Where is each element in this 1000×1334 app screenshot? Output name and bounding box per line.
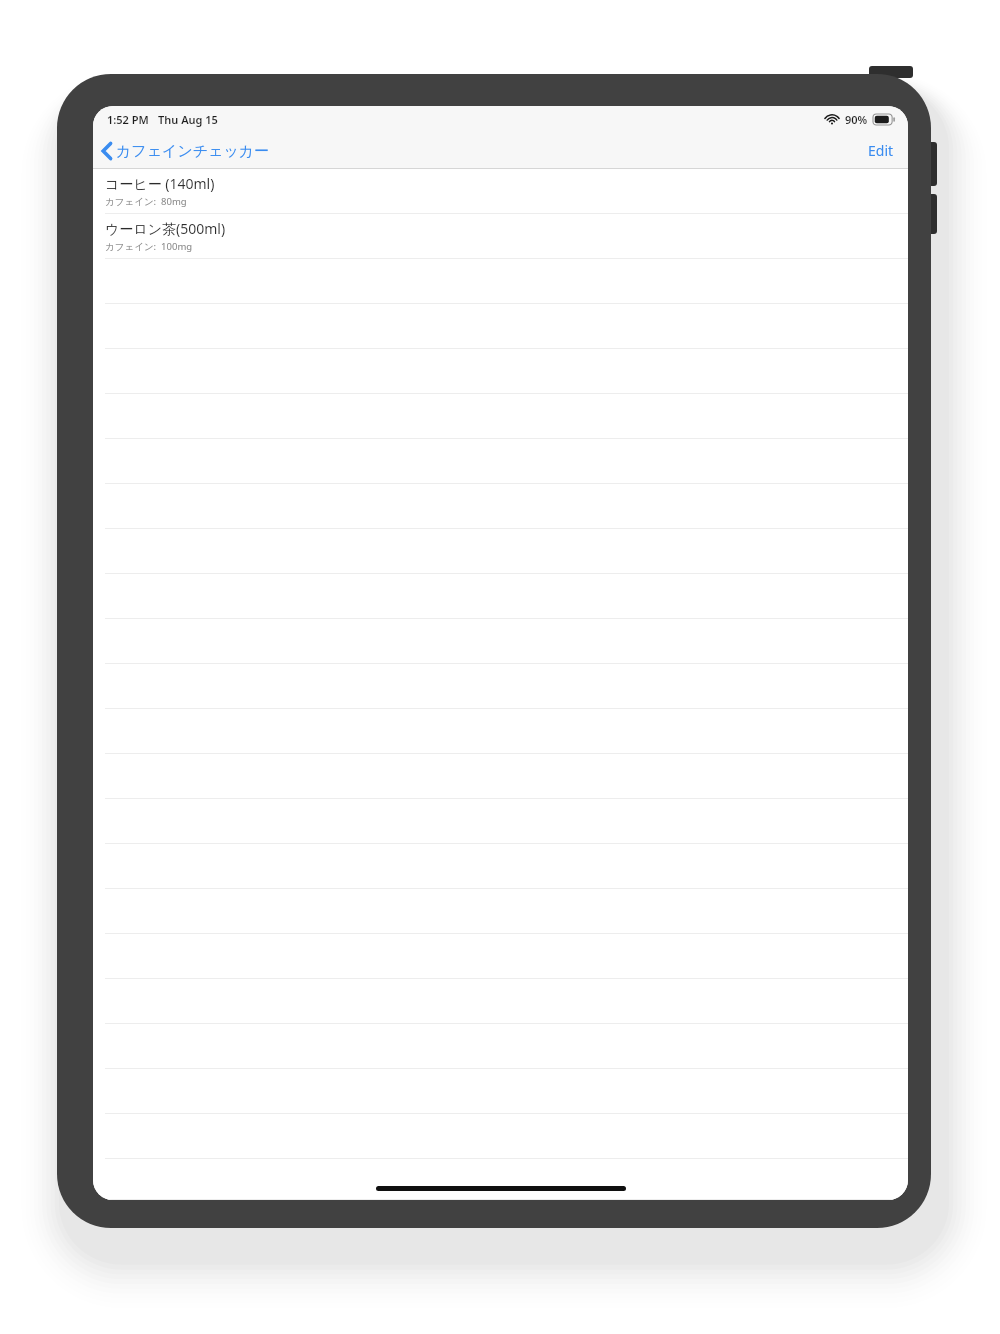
- button[interactable]: Edit: [854, 135, 908, 166]
- staticText: 90%: [845, 112, 868, 127]
- button[interactable]: Back: [93, 137, 280, 165]
- staticText: 1:52 PM: [107, 112, 149, 127]
- button[interactable]: ウーロン茶(500ml): [93, 214, 908, 259]
- staticText: ウーロン茶(500ml): [105, 219, 226, 238]
- button[interactable]: コーヒー (140ml): [93, 169, 908, 214]
- staticText: カフェインチェッカー: [116, 142, 270, 161]
- other: Back: [101, 141, 113, 161]
- staticText: カフェイン: 100mg: [105, 240, 193, 253]
- staticText: コーヒー (140ml): [105, 174, 215, 193]
- staticText: Edit: [868, 141, 894, 160]
- staticText: Thu Aug 15: [158, 112, 218, 127]
- staticText: カフェイン: 80mg: [105, 195, 187, 208]
